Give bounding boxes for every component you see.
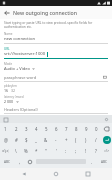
- button[interactable]: 2: [11, 123, 21, 134]
- staticText: pbkeylen: [4, 84, 17, 88]
- staticText: Start typing or paste URL to view protoc…: [4, 21, 108, 29]
- button[interactable]: Clipboard: [3, 117, 8, 122]
- button[interactable]: Symbols: [101, 145, 112, 156]
- staticText: +: [65, 137, 68, 143]
- button[interactable]: ;: [71, 145, 81, 156]
- staticText: 1: [4, 126, 7, 132]
- staticText: 3: [25, 126, 28, 132]
- staticText: ABC: [4, 160, 11, 164]
- button[interactable]: 0: [91, 123, 101, 134]
- staticText: ABC: [101, 160, 108, 164]
- button[interactable]: /: [91, 134, 101, 145]
- staticText: \: [15, 148, 17, 154]
- button[interactable]: 8: [71, 123, 81, 134]
- staticText: 0: [95, 126, 98, 132]
- staticText: 8: [75, 126, 78, 132]
- button[interactable]: ): [81, 134, 91, 145]
- staticText: 2 000: [4, 99, 14, 104]
- button[interactable]: 6: [51, 123, 61, 134]
- button[interactable]: Keyboard settings: [104, 117, 109, 122]
- button[interactable]: Recent apps: [80, 168, 96, 180]
- button[interactable]: 3: [21, 123, 31, 134]
- button[interactable]: \: [11, 145, 21, 156]
- button[interactable]: *: [31, 145, 41, 156]
- staticText: ;: [75, 148, 77, 154]
- staticText: -: [55, 137, 57, 143]
- staticText: *: [35, 148, 38, 154]
- staticText: Name: [4, 32, 13, 36]
- button[interactable]: 7: [61, 123, 71, 134]
- staticText: passphrase word: [4, 75, 102, 80]
- staticText: Mode: [4, 62, 13, 66]
- button[interactable]: &: [41, 134, 51, 145]
- staticText: =\<: [2, 148, 9, 154]
- button[interactable]: Audio + Video: [4, 66, 108, 71]
- staticText: 9: [85, 126, 88, 132]
- button[interactable]: +: [61, 134, 71, 145]
- staticText: 6: [55, 126, 58, 132]
- staticText: New outgoing connection: [13, 9, 78, 16]
- staticText: $: [25, 137, 28, 143]
- staticText: 16: [4, 88, 9, 93]
- staticText: ?: [95, 148, 97, 154]
- button[interactable]: ": [41, 145, 51, 156]
- staticText: 5: [45, 126, 48, 132]
- button[interactable]: Emoji: [25, 156, 35, 167]
- button[interactable]: 4: [31, 123, 41, 134]
- staticText: ,: [19, 159, 21, 165]
- button[interactable]: 1: [0, 123, 11, 134]
- button[interactable]: -: [51, 134, 61, 145]
- button[interactable]: %: [21, 145, 31, 156]
- staticText: Audio + Video: [4, 66, 30, 71]
- staticText: =\>: [104, 148, 110, 153]
- button[interactable]: !: [81, 145, 91, 156]
- staticText: URL: [4, 47, 10, 51]
- button[interactable]: .: [87, 156, 97, 167]
- button[interactable]: :: [61, 145, 71, 156]
- staticText: .: [91, 159, 93, 165]
- button[interactable]: _: [31, 134, 41, 145]
- button[interactable]: ': [51, 145, 61, 156]
- staticText: ): [85, 137, 87, 143]
- staticText: Headers (Optional): [4, 107, 38, 112]
- staticText: #: [15, 137, 18, 143]
- button[interactable]: ABC: [97, 156, 112, 167]
- staticText: 7: [65, 126, 68, 132]
- staticText: ": [45, 148, 47, 154]
- staticText: !: [85, 148, 87, 154]
- button[interactable]: Enter: [101, 134, 112, 145]
- button[interactable]: Back: [0, 6, 13, 19]
- staticText: (: [75, 137, 77, 143]
- button[interactable]: ABC: [0, 156, 15, 167]
- staticText: latency (msec): [4, 95, 25, 99]
- button[interactable]: (: [71, 134, 81, 145]
- staticText: @: [4, 137, 8, 143]
- staticText: 4: [35, 126, 38, 132]
- button[interactable]: $: [21, 134, 31, 145]
- staticText: 32: [11, 88, 16, 93]
- button[interactable]: =\<: [0, 145, 11, 156]
- button[interactable]: 9: [81, 123, 91, 134]
- button[interactable]: Show password: [102, 74, 108, 80]
- staticText: 2: [15, 126, 18, 132]
- staticText: /: [95, 137, 97, 143]
- button[interactable]: Backspace: [101, 123, 112, 134]
- button[interactable]: ,: [15, 156, 25, 167]
- button[interactable]: @: [0, 134, 11, 145]
- staticText: &: [44, 137, 48, 143]
- button[interactable]: Back: [16, 168, 32, 180]
- staticText: ': [56, 148, 57, 154]
- staticText: srt://hostserver:1000: [4, 51, 46, 57]
- staticText: %: [24, 148, 28, 154]
- button[interactable]: Home: [48, 168, 64, 180]
- button[interactable]: #: [11, 134, 21, 145]
- staticText: _: [35, 137, 37, 143]
- staticText: new connection: [4, 36, 36, 42]
- staticText: :: [65, 148, 67, 154]
- button[interactable]: ?: [91, 145, 101, 156]
- button[interactable]: 5: [41, 123, 51, 134]
